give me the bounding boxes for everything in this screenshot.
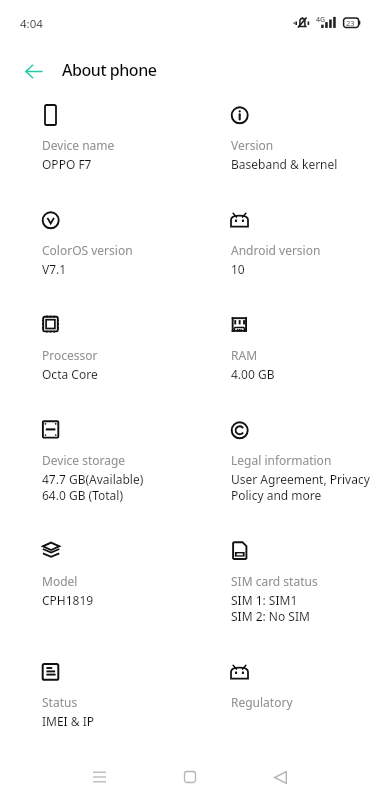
button[interactable]: Version: [231, 104, 371, 172]
button[interactable]: Device storage: [42, 419, 231, 503]
staticText: Device name: [42, 137, 115, 153]
staticText: Model: [42, 573, 78, 589]
staticText: 47.7 GB(Available): [42, 471, 144, 487]
staticText: Regulatory: [231, 694, 293, 710]
staticText: 10: [231, 261, 245, 277]
button[interactable]: RAM: [231, 314, 371, 382]
staticText: V7.1: [42, 261, 67, 277]
staticText: CPH1819: [42, 592, 94, 608]
staticText: SIM card status: [231, 573, 318, 589]
staticText: 4.00 GB: [231, 366, 275, 382]
staticText: User Agreement, Privacy: [231, 471, 370, 487]
staticText: Android version: [231, 242, 321, 258]
button[interactable]: SIM card status: [231, 540, 371, 624]
staticText: About phone: [62, 59, 157, 81]
staticText: 4G: [316, 15, 326, 25]
staticText: OPPO F7: [42, 156, 92, 172]
button[interactable]: Home: [170, 757, 210, 797]
staticText: Baseband & kernel: [231, 156, 338, 172]
button[interactable]: Processor: [42, 314, 231, 382]
button[interactable]: Back: [15, 53, 51, 89]
staticText: SIM 1: SIM1: [231, 592, 298, 608]
button[interactable]: Legal information: [231, 419, 371, 503]
staticText: 4:04: [20, 16, 43, 32]
button[interactable]: Back: [260, 757, 300, 797]
staticText: Device storage: [42, 452, 126, 468]
staticText: 64.0 GB (Total): [42, 487, 124, 503]
button[interactable]: Device name: [42, 104, 231, 172]
staticText: SIM 2: No SIM: [231, 608, 310, 624]
staticText: Octa Core: [42, 366, 98, 382]
staticText: Policy and more: [231, 487, 322, 503]
staticText: Legal information: [231, 452, 332, 468]
staticText: ColorOS version: [42, 242, 133, 258]
button[interactable]: Status: [42, 661, 231, 729]
staticText: Status: [42, 694, 78, 710]
button[interactable]: Recent apps: [79, 757, 119, 797]
button[interactable]: Regulatory: [231, 661, 371, 713]
staticText: IMEI & IP: [42, 713, 95, 729]
staticText: 23: [346, 18, 355, 28]
button[interactable]: Model: [42, 540, 231, 608]
staticText: Processor: [42, 347, 98, 363]
button[interactable]: ColorOS version: [42, 209, 231, 277]
staticText: RAM: [231, 347, 258, 363]
staticText: Version: [231, 137, 274, 153]
button[interactable]: Android version: [231, 209, 371, 277]
